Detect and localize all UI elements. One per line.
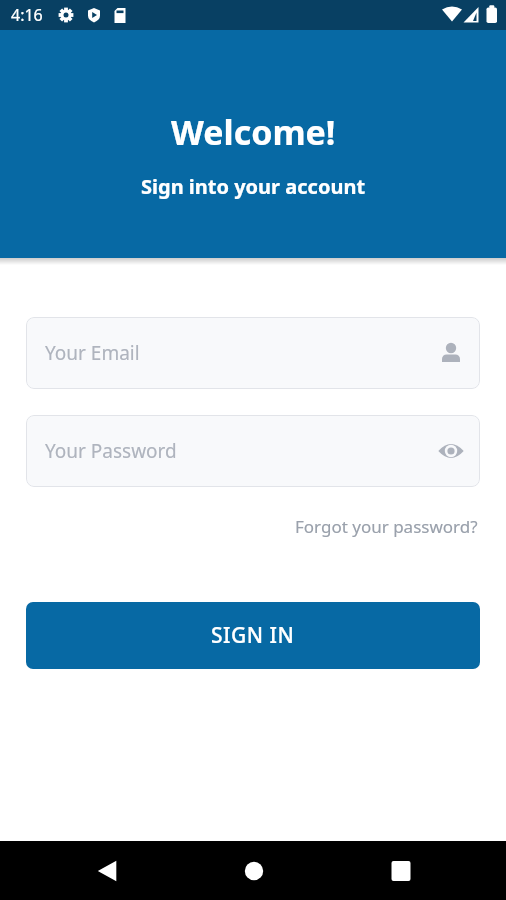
button[interactable]: Your Email (26, 317, 480, 389)
staticText: SIGN IN (211, 621, 295, 650)
button[interactable] (180, 841, 327, 900)
staticText: 4:16 (11, 4, 43, 26)
staticText: Welcome! (171, 109, 336, 155)
staticText: Sign into your account (141, 173, 366, 200)
button[interactable]: Your Password (26, 415, 480, 487)
staticText: Your Email (45, 340, 140, 366)
staticText: Your Password (45, 438, 177, 464)
button[interactable] (327, 841, 474, 900)
button[interactable]: SIGN IN (26, 602, 480, 669)
button[interactable]: Forgot your password? (293, 513, 480, 540)
button[interactable] (33, 841, 180, 900)
